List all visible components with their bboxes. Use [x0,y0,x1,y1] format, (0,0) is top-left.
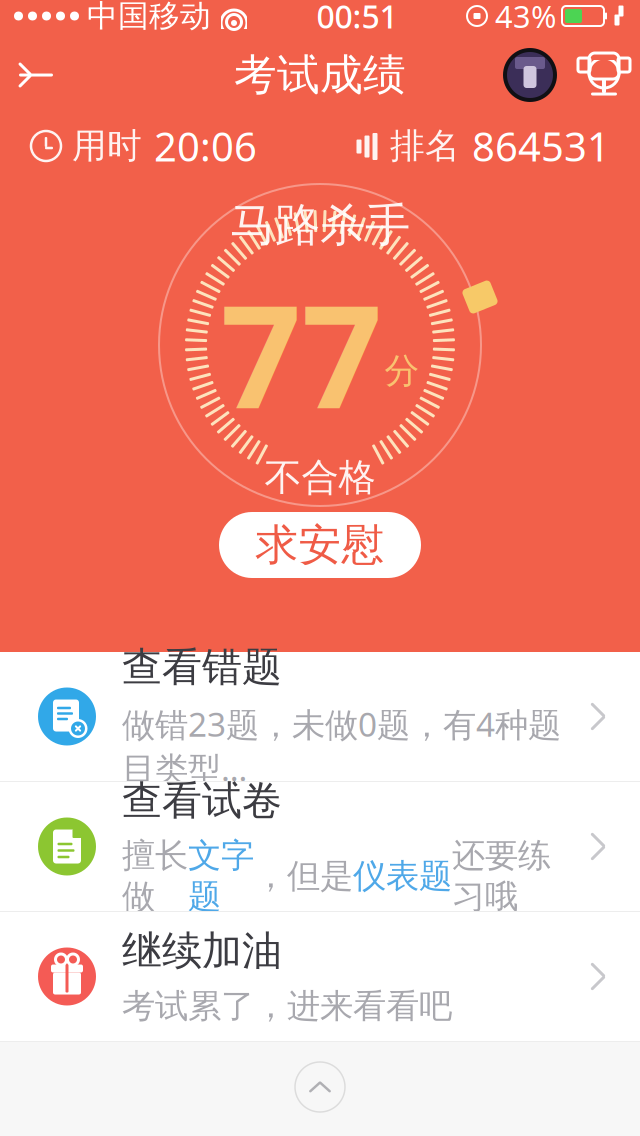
button[interactable]: 奖杯 [568,43,640,107]
staticText: 考试累了，进来看看吧 [122,986,452,1026]
staticText: 继续加油 [122,926,282,976]
staticText: 43% [495,0,556,36]
staticText: 做错23题，未做0题，有4种题目类型… [122,702,561,790]
button[interactable]: 收起 [270,1042,370,1132]
staticText: 中国移动 [87,0,211,35]
button[interactable]: 查看错题 [0,652,640,782]
staticText: 排名 [390,125,460,167]
staticText: 查看试卷 [122,776,282,825]
staticText: 马路杀手 [230,197,410,253]
staticText: 不合格 [264,455,375,501]
staticText: 还要练习哦 [452,835,551,917]
staticText: 求安慰 [255,519,384,571]
staticText: 77 [220,259,382,447]
staticText: 文字题 [188,835,254,917]
staticText: 考试成绩 [234,49,406,101]
button[interactable]: 查看试卷 [0,782,640,912]
button[interactable]: 继续加油 [0,912,640,1042]
staticText: 分 [384,350,419,392]
staticText: 用时 [72,125,142,167]
staticText: 864531 [472,119,610,172]
staticText: ，但是 [254,856,353,896]
button[interactable]: 求安慰 [219,512,421,578]
staticText: 查看错题 [122,643,282,692]
staticText: 仪表题 [353,856,452,896]
button[interactable]: 个人头像 [492,43,568,107]
button[interactable]: 返回 [0,43,72,107]
staticText: 20:06 [154,119,257,172]
staticText: 00:51 [316,0,397,37]
staticText: 擅长做 [122,835,188,917]
